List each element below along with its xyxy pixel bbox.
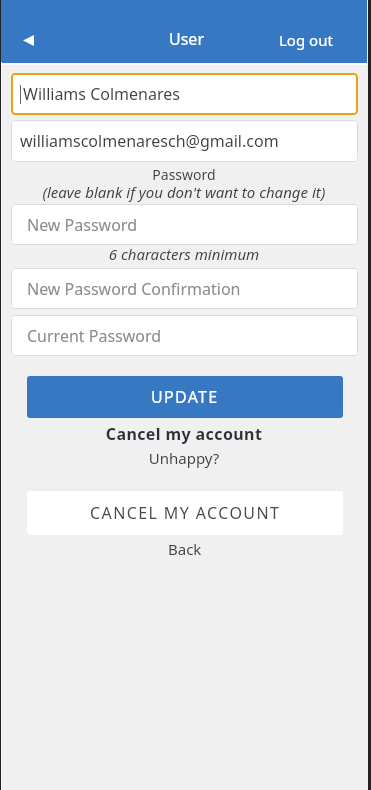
staticText: CANCEL MY ACCOUNT bbox=[90, 502, 281, 524]
staticText: User bbox=[169, 28, 204, 50]
button[interactable]: New Password bbox=[11, 204, 358, 245]
button[interactable]: Back bbox=[10, 22, 46, 58]
button[interactable]: New Password Confirmation bbox=[11, 268, 358, 309]
staticText: UPDATE bbox=[151, 386, 219, 408]
staticText: Current Password bbox=[27, 325, 162, 347]
button[interactable]: Back bbox=[161, 538, 209, 560]
staticText: Unhappy? bbox=[1, 448, 367, 468]
staticText: New Password Confirmation bbox=[27, 278, 241, 300]
staticText: williamscolmenaresch@gmail.com bbox=[20, 130, 279, 152]
staticText: Log out bbox=[279, 30, 333, 50]
button[interactable]: Williams Colmenares bbox=[11, 73, 358, 115]
staticText: Password bbox=[1, 165, 367, 184]
staticText: (leave blank if you don't want to change… bbox=[1, 182, 367, 202]
button[interactable]: Current Password bbox=[11, 315, 358, 356]
staticText: Cancel my account bbox=[1, 423, 367, 445]
staticText: New Password bbox=[27, 214, 137, 236]
button[interactable]: UPDATE bbox=[27, 376, 343, 418]
button[interactable]: CANCEL MY ACCOUNT bbox=[27, 491, 343, 535]
button[interactable]: williamscolmenaresch@gmail.com bbox=[11, 120, 358, 162]
staticText: Back bbox=[168, 539, 202, 559]
staticText: Williams Colmenares bbox=[23, 83, 180, 105]
button[interactable]: Log out bbox=[275, 26, 337, 54]
staticText: 6 characters minimum bbox=[1, 244, 367, 264]
